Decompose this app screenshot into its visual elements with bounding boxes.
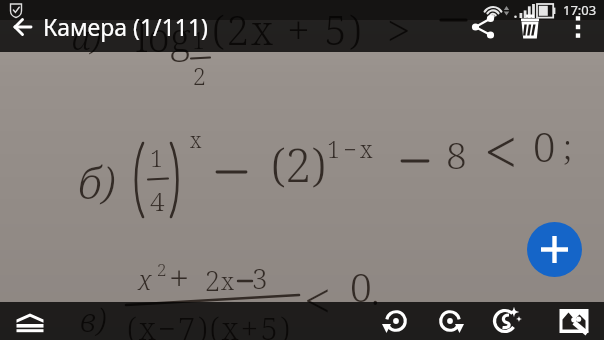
staticText: 8 — [446, 129, 467, 179]
staticText: Камера (1/111) — [43, 11, 209, 42]
staticText: 0 — [533, 119, 556, 173]
staticText: < — [484, 110, 518, 192]
staticText: < — [304, 267, 331, 332]
button[interactable]: More options — [562, 20, 594, 52]
staticText: а) — [72, 14, 102, 60]
staticText: ; — [563, 123, 573, 171]
staticText: 1−x — [327, 133, 376, 164]
button[interactable]: Back — [0, 20, 40, 52]
button[interactable]: Add — [527, 222, 582, 277]
button[interactable]: Rotate left — [372, 302, 420, 340]
staticText: 4 — [150, 183, 165, 218]
staticText: (2) — [271, 133, 326, 196]
staticText: 1 — [150, 142, 163, 173]
button[interactable]: Auto enhance — [481, 302, 529, 340]
staticText: 2 — [205, 262, 221, 299]
staticText: б) — [78, 153, 116, 212]
staticText: (x−7)(x+5) — [127, 307, 293, 340]
button[interactable]: Delete — [509, 20, 551, 52]
staticText: 17:03 — [563, 1, 597, 19]
staticText: > — [387, 1, 411, 58]
button[interactable]: Edit — [550, 302, 598, 340]
button[interactable]: Menu — [8, 302, 52, 340]
staticText: 1 — [192, 24, 205, 55]
staticText: x — [138, 261, 152, 298]
staticText: log — [136, 9, 191, 63]
button[interactable]: Rotate right — [426, 302, 474, 340]
button[interactable]: Share — [462, 20, 504, 52]
staticText: (2x + 5) — [212, 2, 364, 56]
staticText: 3 — [252, 259, 268, 297]
staticText: x — [221, 264, 234, 297]
staticText: в) — [80, 298, 107, 340]
staticText: . — [371, 264, 380, 316]
staticText: 0 — [350, 260, 372, 313]
staticText: 2 — [157, 258, 167, 281]
staticText: 2 — [193, 60, 206, 91]
staticText: + — [169, 253, 190, 302]
staticText: x — [190, 126, 202, 155]
